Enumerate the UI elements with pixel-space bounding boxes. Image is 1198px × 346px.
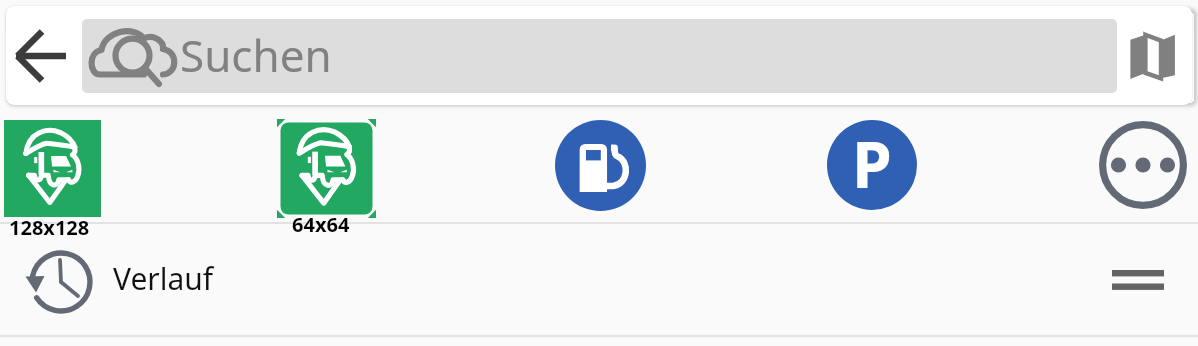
staticText: 128x128 xyxy=(9,214,90,241)
button[interactable]: Fuel stations xyxy=(555,120,646,211)
staticText: P xyxy=(852,120,892,207)
staticText: Verlauf xyxy=(113,258,214,299)
button[interactable]: Campsites xyxy=(4,120,101,217)
staticText: Suchen xyxy=(180,25,332,85)
button[interactable]: Back xyxy=(6,21,76,91)
button[interactable]: Parking xyxy=(827,120,917,210)
button[interactable]: Verlauf xyxy=(0,224,1198,335)
button[interactable]: Suchen xyxy=(82,19,1117,93)
button[interactable]: More categories xyxy=(1099,121,1187,209)
button[interactable]: Campsites small xyxy=(277,119,376,218)
staticText: 64x64 xyxy=(292,211,350,238)
button[interactable]: Map xyxy=(1119,25,1179,85)
